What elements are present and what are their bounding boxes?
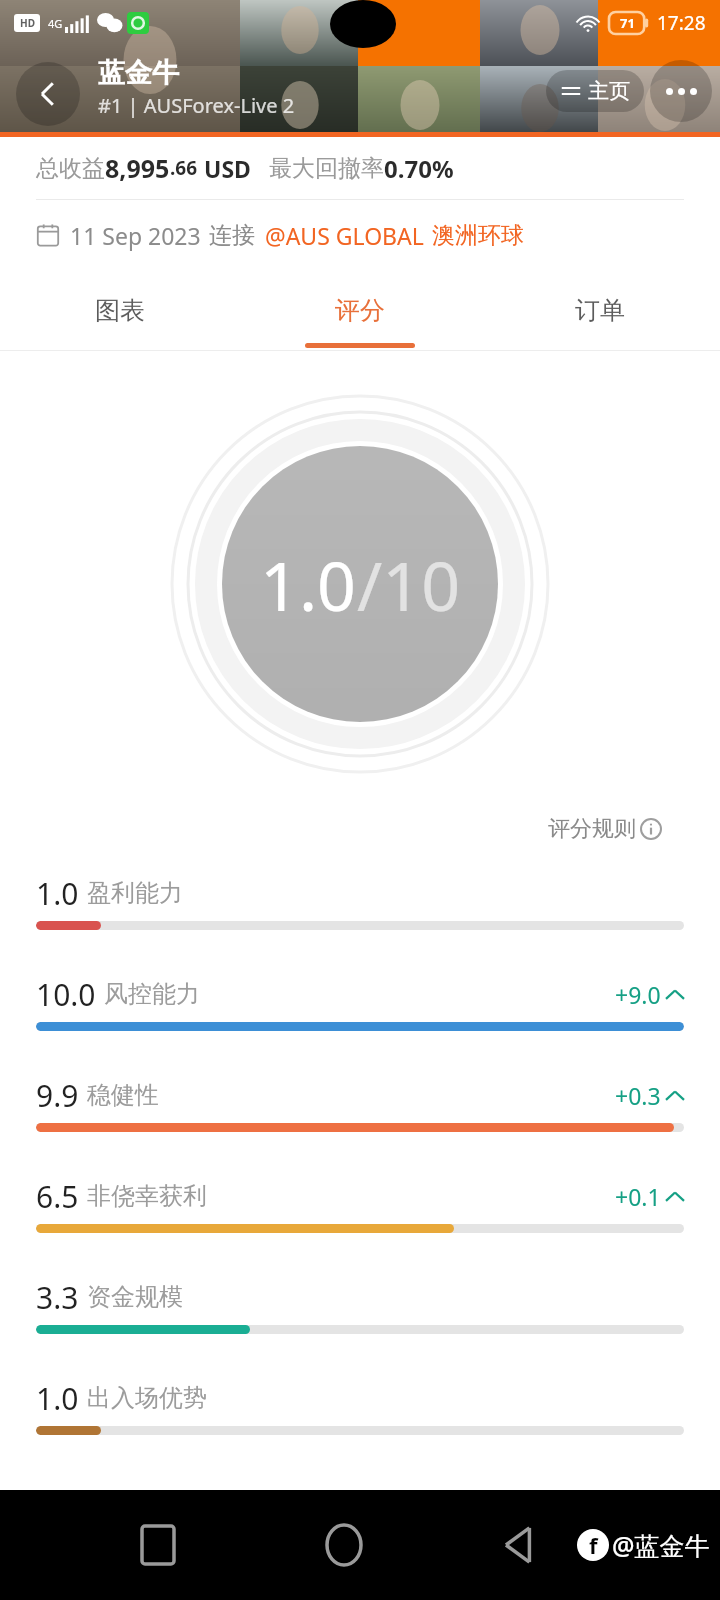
button[interactable]: 评分规则 (542, 809, 668, 849)
staticText: 出入场优势 (87, 1383, 207, 1413)
staticText: USD (204, 153, 251, 184)
staticText: +0.3 (615, 1080, 661, 1111)
button[interactable]: @AUS GLOBAL (265, 220, 524, 251)
button[interactable]: Back (483, 1510, 553, 1580)
staticText: 非侥幸获利 (87, 1181, 207, 1211)
staticText: 连接 (209, 221, 255, 250)
button[interactable]: More options (650, 60, 712, 122)
staticText: 1.0 (260, 538, 357, 631)
staticText: 11 Sep 2023 (70, 220, 201, 251)
staticText: 4G (48, 16, 63, 31)
staticText: +9.0 (615, 979, 661, 1010)
button[interactable]: Home (309, 1510, 379, 1580)
staticText: 评分 (335, 295, 385, 326)
staticText: 资金规模 (87, 1282, 183, 1312)
staticText: 澳洲环球 (432, 221, 524, 250)
staticText: 风控能力 (104, 979, 200, 1009)
staticText: 主页 (588, 78, 630, 104)
staticText: HD (20, 16, 35, 30)
staticText: #1 | AUSForex-Live 2 (98, 92, 295, 119)
staticText: 1.0 (36, 1378, 79, 1419)
staticText: /10 (357, 538, 461, 631)
staticText: 稳健性 (87, 1080, 159, 1110)
staticText: 评分规则 (548, 815, 636, 843)
staticText: 10.0 (36, 974, 96, 1015)
button[interactable]: 订单 (480, 270, 720, 350)
staticText: .66 (170, 155, 198, 181)
staticText: 8,995 (105, 151, 170, 185)
staticText: 71 (620, 14, 635, 32)
staticText: 订单 (575, 295, 625, 326)
button[interactable]: 评分 (240, 270, 480, 350)
staticText: 0.70% (384, 152, 454, 185)
staticText: 17:28 (657, 10, 706, 36)
staticText: @蓝金牛 (612, 1528, 710, 1562)
staticText: 9.9 (36, 1075, 79, 1116)
button[interactable]: 图表 (0, 270, 240, 350)
staticText: 1.0 (36, 873, 79, 914)
staticText: @AUS GLOBAL (265, 220, 424, 251)
staticText: 蓝金牛 (98, 56, 179, 90)
button[interactable]: Back (16, 62, 80, 126)
button[interactable]: Recents (123, 1510, 193, 1580)
staticText: 图表 (95, 295, 145, 326)
staticText: +0.1 (615, 1181, 661, 1212)
staticText: 6.5 (36, 1176, 79, 1217)
staticText: 最大回撤率 (269, 154, 384, 183)
staticText: 总收益 (36, 154, 105, 183)
staticText: f (589, 1530, 598, 1560)
button[interactable]: 主页 (546, 70, 644, 112)
staticText: 3.3 (36, 1277, 79, 1318)
staticText: 盈利能力 (87, 878, 183, 908)
